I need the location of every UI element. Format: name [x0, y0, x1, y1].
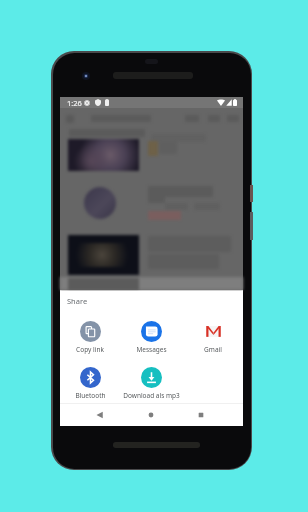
staticText: Messages [136, 345, 167, 354]
staticText: Bluetooth [75, 391, 106, 400]
staticText: Download als mp3 [123, 391, 180, 400]
button[interactable]: Download als mp3 [121, 366, 181, 400]
staticText: Gmail [204, 345, 222, 354]
staticText: Share [67, 296, 88, 306]
button[interactable]: Messages [121, 320, 181, 354]
button[interactable]: Gmail [183, 320, 243, 354]
button[interactable]: Back [87, 404, 113, 425]
button[interactable]: Copy link [60, 320, 120, 354]
button[interactable]: Bluetooth [60, 366, 120, 400]
staticText: Copy link [76, 345, 104, 354]
button[interactable]: Recent apps [188, 404, 214, 425]
button[interactable]: Home [138, 404, 164, 425]
staticText: 1:26 [67, 98, 82, 108]
